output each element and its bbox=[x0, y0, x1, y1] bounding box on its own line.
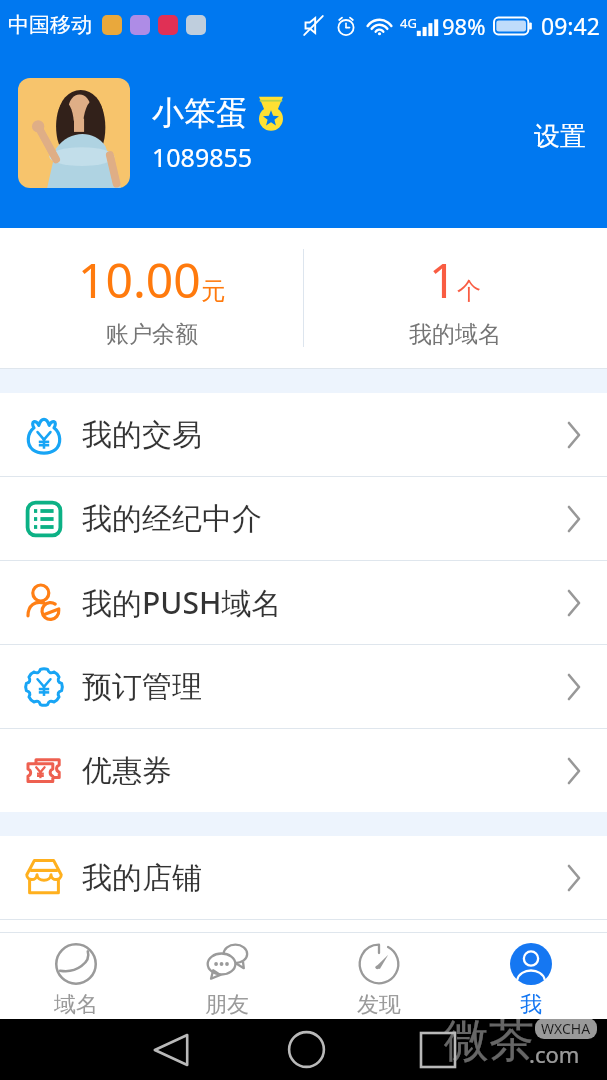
button[interactable]: 我的经纪中介 bbox=[0, 477, 607, 560]
other: 我的PUSH域名 bbox=[24, 583, 64, 623]
staticText: 账户余额 bbox=[106, 320, 198, 349]
staticText: 中国移动 bbox=[8, 12, 92, 38]
other: 预订管理 bbox=[24, 667, 64, 707]
other: 我的交易 bbox=[24, 415, 64, 455]
other: Recents bbox=[421, 1033, 455, 1067]
staticText: 设置 bbox=[534, 120, 586, 153]
staticText: 我的店铺 bbox=[82, 859, 202, 897]
other: 我的经纪中介 bbox=[24, 499, 64, 539]
other: Open 我的经纪中介 bbox=[565, 504, 583, 534]
other: Open 我的交易 bbox=[565, 420, 583, 450]
staticText: 优惠券 bbox=[82, 752, 172, 790]
staticText: 我的交易 bbox=[82, 416, 202, 454]
button[interactable]: 发现 bbox=[303, 933, 455, 1019]
other: 我 bbox=[510, 943, 552, 985]
staticText: 10.00 bbox=[78, 247, 201, 312]
button[interactable]: 我的交易 bbox=[0, 393, 607, 476]
button[interactable]: 我的PUSH域名 bbox=[0, 561, 607, 644]
staticText: .com bbox=[529, 1039, 580, 1069]
button[interactable]: 我 bbox=[455, 933, 607, 1019]
staticText: 预订管理 bbox=[82, 668, 202, 706]
button[interactable]: 10.00 bbox=[0, 228, 303, 368]
staticText: 个 bbox=[457, 276, 481, 306]
staticText: 1089855 bbox=[152, 140, 253, 174]
other: Back bbox=[153, 1033, 189, 1067]
other: 发现 bbox=[358, 943, 400, 985]
staticText: 发现 bbox=[357, 991, 401, 1019]
staticText: 我 bbox=[520, 991, 542, 1019]
staticText: WXCHA bbox=[541, 1019, 591, 1038]
button[interactable]: 优惠券 bbox=[0, 729, 607, 812]
button[interactable]: 朋友 bbox=[151, 933, 303, 1019]
staticText: 元 bbox=[201, 276, 225, 306]
button[interactable]: 域名 bbox=[0, 933, 151, 1019]
other: Home bbox=[288, 1031, 325, 1068]
staticText: 我的域名 bbox=[409, 320, 501, 349]
other: Open 我的店铺 bbox=[565, 863, 583, 893]
staticText: 我的经纪中介 bbox=[82, 500, 262, 538]
staticText: 4G bbox=[400, 14, 417, 32]
other: 优惠券 bbox=[24, 751, 64, 791]
staticText: 我的PUSH域名 bbox=[82, 582, 282, 623]
other: 朋友 bbox=[206, 943, 248, 985]
button[interactable]: 1 bbox=[303, 228, 607, 368]
button[interactable] bbox=[18, 78, 130, 188]
other: Open 预订管理 bbox=[565, 672, 583, 702]
button[interactable]: 设置 bbox=[528, 112, 592, 161]
staticText: 朋友 bbox=[205, 991, 249, 1019]
staticText: 09:42 bbox=[541, 10, 600, 41]
button[interactable]: 我的店铺 bbox=[0, 836, 607, 919]
other: Open 我的PUSH域名 bbox=[565, 588, 583, 618]
other: Open 优惠券 bbox=[565, 756, 583, 786]
staticText: 98% bbox=[442, 11, 486, 41]
staticText: 小笨蛋 bbox=[152, 93, 248, 133]
staticText: 域名 bbox=[54, 991, 98, 1019]
staticText: 1 bbox=[429, 247, 457, 312]
staticText: 微茶 bbox=[444, 1013, 534, 1070]
other: 域名 bbox=[55, 943, 97, 985]
other: 我的店铺 bbox=[24, 858, 64, 898]
button[interactable]: 预订管理 bbox=[0, 645, 607, 728]
